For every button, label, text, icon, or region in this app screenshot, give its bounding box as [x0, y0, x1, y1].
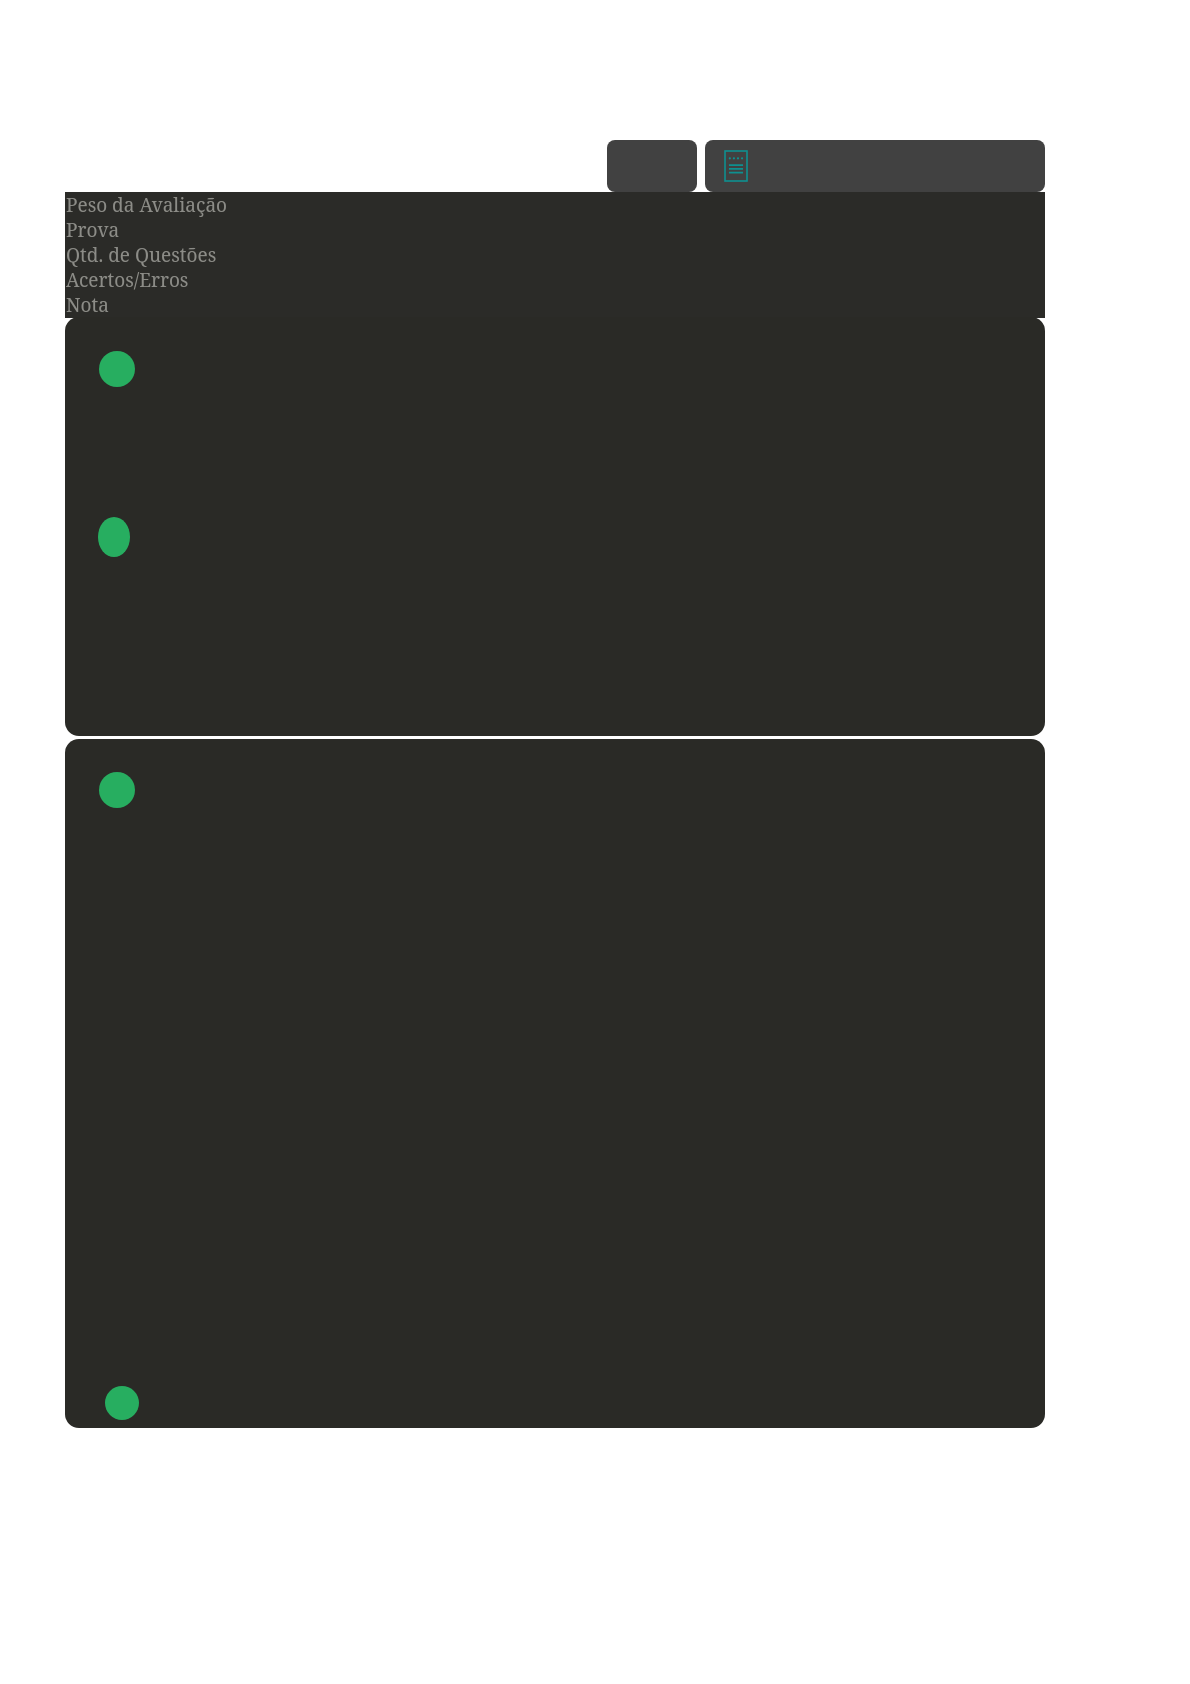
- staticText: Peso da Avaliação: [66, 192, 228, 217]
- staticText: Nota: [66, 292, 109, 317]
- button[interactable]: Filtro: [607, 140, 697, 192]
- button[interactable]: [65, 317, 1045, 736]
- staticText: Prova: [66, 217, 120, 242]
- button[interactable]: Relatório: [705, 140, 1045, 192]
- staticText: Acertos/Erros: [66, 267, 189, 292]
- staticText: Qtd. de Questões: [66, 242, 217, 267]
- button[interactable]: [65, 739, 1045, 1428]
